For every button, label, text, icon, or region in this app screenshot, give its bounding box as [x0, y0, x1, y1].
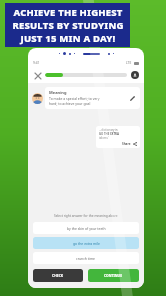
- staticText: Share: [122, 142, 131, 146]
- staticText: CHECK: [52, 273, 64, 278]
- button[interactable]: CONTINUE: [88, 269, 139, 282]
- staticText: go the extra mile: [73, 241, 100, 246]
- staticText: Meaning: [49, 90, 67, 95]
- button[interactable]: by the skin of your teeth: [33, 222, 139, 234]
- button[interactable]: Close: [33, 71, 42, 80]
- button[interactable]: go the extra mile: [33, 237, 139, 249]
- staticText: 9:41: [33, 61, 40, 65]
- staticText: To make a special effort; to very: [49, 96, 100, 101]
- staticText: CONTINUE: [104, 273, 123, 278]
- staticText: GO THE EXTRA: [99, 132, 119, 136]
- staticText: idioms ': [99, 136, 110, 140]
- button[interactable]: Meaning: [45, 87, 140, 109]
- staticText: ACHIEVE THE HIGHEST: [13, 6, 123, 19]
- staticText: by the skin of your teeth: [67, 226, 106, 231]
- staticText: ...dictionary in: [99, 128, 118, 132]
- staticText: LTE: [126, 61, 132, 65]
- button[interactable]: Edit: [128, 94, 136, 102]
- button[interactable]: crunch time: [33, 252, 139, 264]
- button[interactable]: CHECK: [33, 269, 83, 282]
- staticText: hard; to achieve your goal: [49, 101, 91, 106]
- staticText: JUST 15 MIN A DAY!: [20, 32, 116, 45]
- staticText: Select right answer for the meaning abov…: [54, 214, 118, 218]
- button[interactable]: ...dictionary in: [96, 126, 140, 148]
- button[interactable]: Profile: [131, 71, 139, 79]
- staticText: crunch time: [76, 256, 96, 261]
- staticText: RESULTS BY STUDYING: [12, 19, 124, 32]
